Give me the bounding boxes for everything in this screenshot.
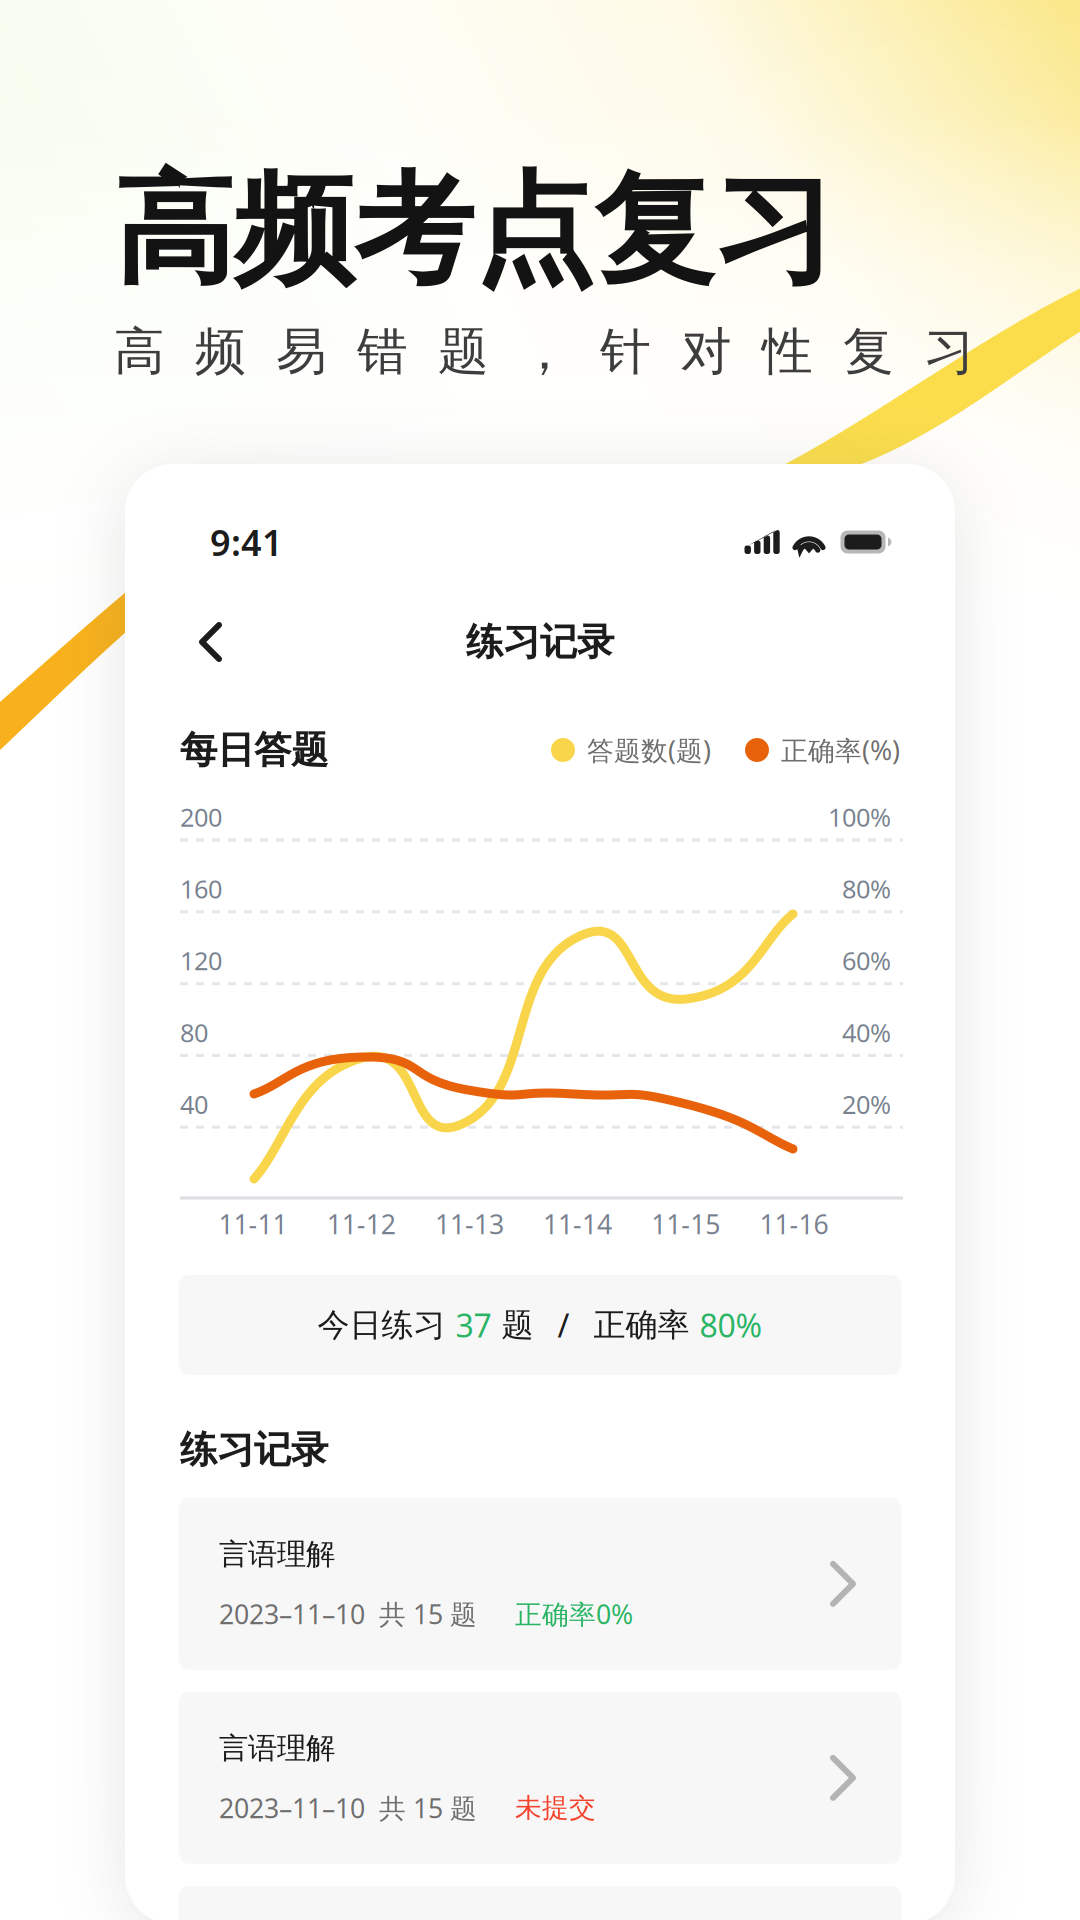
staticText: 每日答题 xyxy=(180,727,328,773)
staticText: 未提交 xyxy=(515,1791,596,1824)
staticText: 正确率(%) xyxy=(781,732,900,768)
staticText: 80% xyxy=(842,872,891,905)
staticText: 2023–11–10 共 15 题 xyxy=(219,1790,477,1826)
staticText: 高频考点复习 xyxy=(114,157,834,304)
staticText: 正确率 xyxy=(593,1305,699,1345)
staticText: 80% xyxy=(699,1304,762,1346)
button[interactable]: 返回 xyxy=(125,611,258,673)
staticText: 练习记录 xyxy=(466,619,614,665)
staticText: 高 频 易 错 题 ， 针 对 性 复 习 xyxy=(114,320,975,383)
staticText: 11-16 xyxy=(759,1206,828,1242)
staticText: 37 xyxy=(455,1304,491,1346)
staticText: 正确率0% xyxy=(515,1596,633,1632)
staticText: 20% xyxy=(842,1087,891,1121)
staticText: 今日练习 xyxy=(317,1305,455,1345)
staticText: 答题数(题) xyxy=(587,732,711,768)
staticText: 160 xyxy=(180,872,222,905)
staticText: 200 xyxy=(180,800,222,834)
staticText: 11-14 xyxy=(543,1206,612,1242)
staticText: 2023–11–10 共 15 题 xyxy=(219,1596,477,1632)
staticText: 80 xyxy=(180,1015,208,1049)
staticText: 11-12 xyxy=(327,1206,396,1242)
staticText: 60% xyxy=(842,944,891,977)
button[interactable]: 言语理解 xyxy=(125,1692,901,1864)
staticText: 120 xyxy=(180,944,222,977)
staticText: 11-13 xyxy=(435,1206,504,1242)
staticText: 练习记录 xyxy=(180,1427,328,1473)
staticText: / xyxy=(533,1304,593,1346)
staticText: 40% xyxy=(842,1015,891,1049)
staticText: 11-15 xyxy=(651,1206,720,1242)
staticText: 40 xyxy=(180,1087,208,1121)
staticText: 11-11 xyxy=(218,1206,287,1242)
staticText: 言语理解 xyxy=(219,1536,335,1572)
staticText: 言语理解 xyxy=(219,1730,335,1766)
staticText: 9:41 xyxy=(210,518,283,566)
button[interactable]: 言语理解 xyxy=(125,1498,901,1670)
staticText: 题 xyxy=(491,1305,533,1345)
staticText: 100% xyxy=(828,800,891,834)
